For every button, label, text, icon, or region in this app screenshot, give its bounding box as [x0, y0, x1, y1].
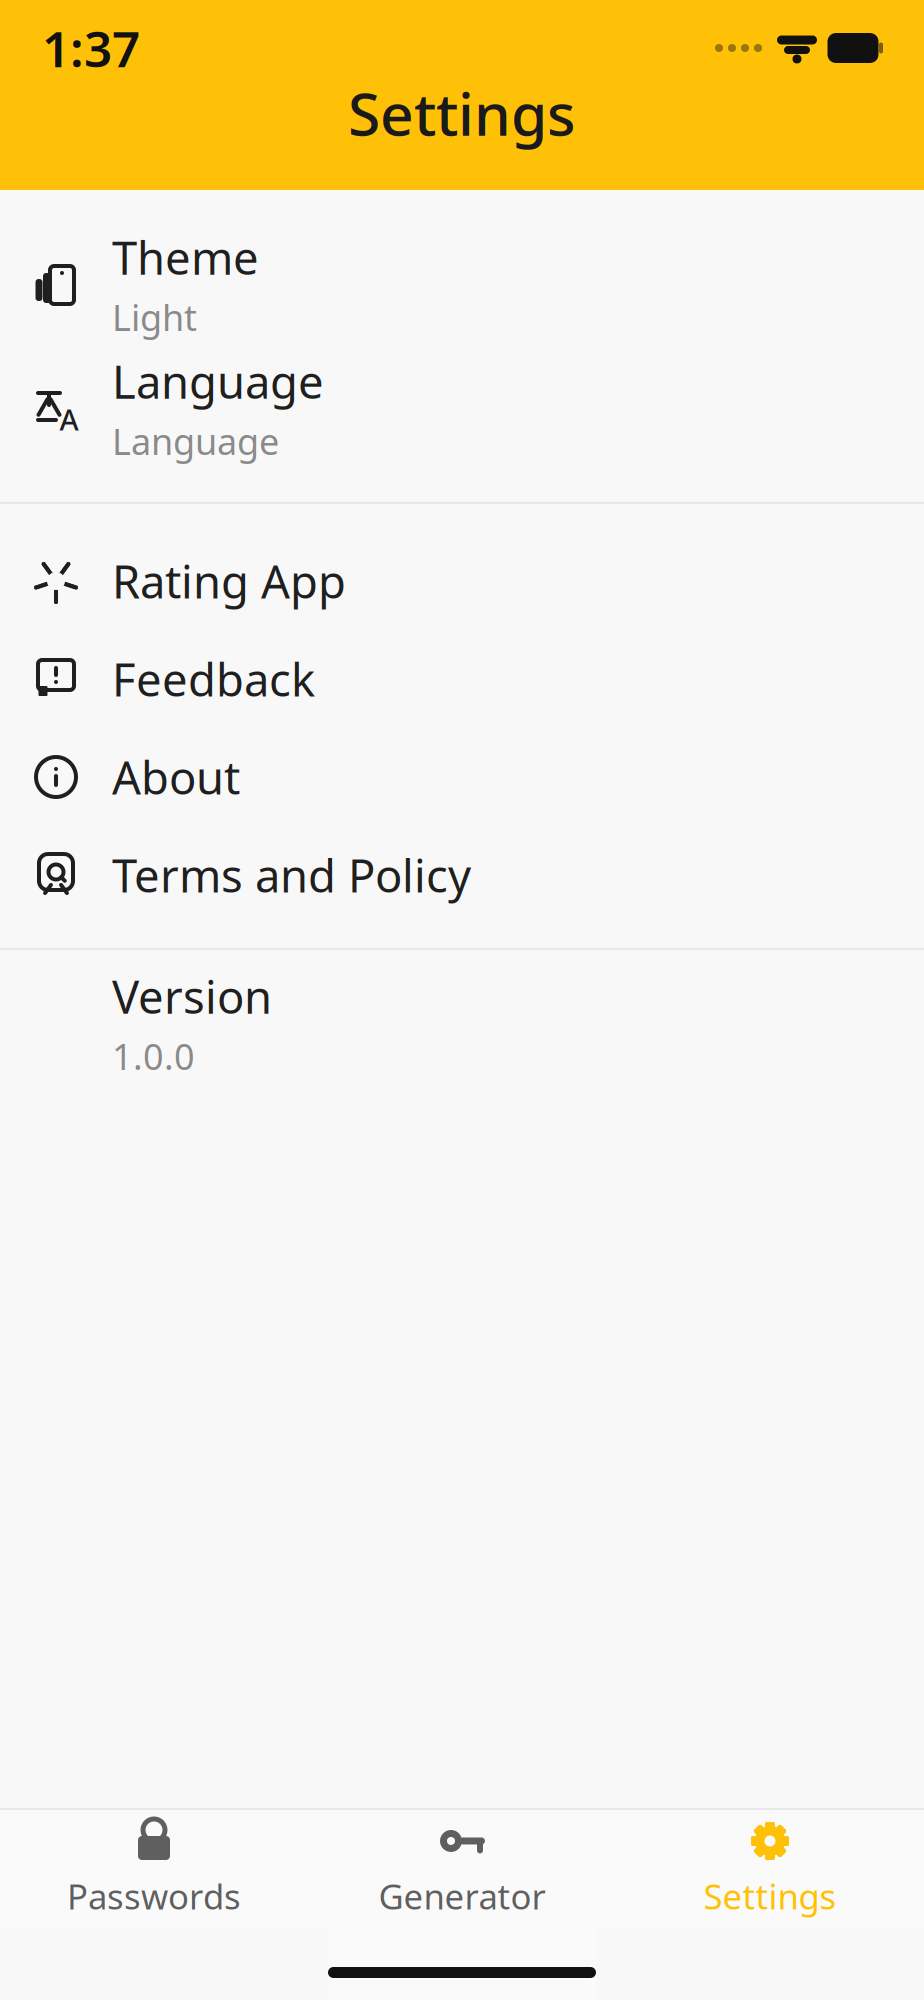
staticText: Feedback [112, 649, 315, 709]
staticText: Language [112, 351, 324, 411]
button[interactable]: Generator [308, 1810, 616, 1928]
button[interactable]: Rating App [0, 532, 924, 630]
staticText: Settings [348, 74, 576, 152]
button[interactable]: Feedback [0, 630, 924, 728]
button[interactable]: Theme [0, 232, 924, 336]
staticText: Terms and Policy [112, 845, 471, 905]
staticText: Theme [112, 227, 259, 287]
button[interactable]: Terms and Policy [0, 826, 924, 924]
staticText: Light [112, 293, 197, 341]
button[interactable]: Settings [616, 1810, 924, 1928]
staticText: Passwords [67, 1873, 241, 1919]
staticText: 1.0.0 [112, 1032, 195, 1080]
staticText: 1:37 [42, 15, 140, 81]
staticText: Settings [703, 1873, 836, 1919]
staticText: About [112, 747, 240, 807]
staticText: Version [112, 966, 272, 1026]
staticText: A [59, 399, 78, 438]
button[interactable]: About [0, 728, 924, 826]
staticText: Rating App [112, 551, 346, 611]
button[interactable]: A [0, 356, 924, 460]
staticText: Generator [378, 1873, 545, 1919]
button[interactable]: Passwords [0, 1810, 308, 1928]
staticText: Language [112, 417, 279, 465]
